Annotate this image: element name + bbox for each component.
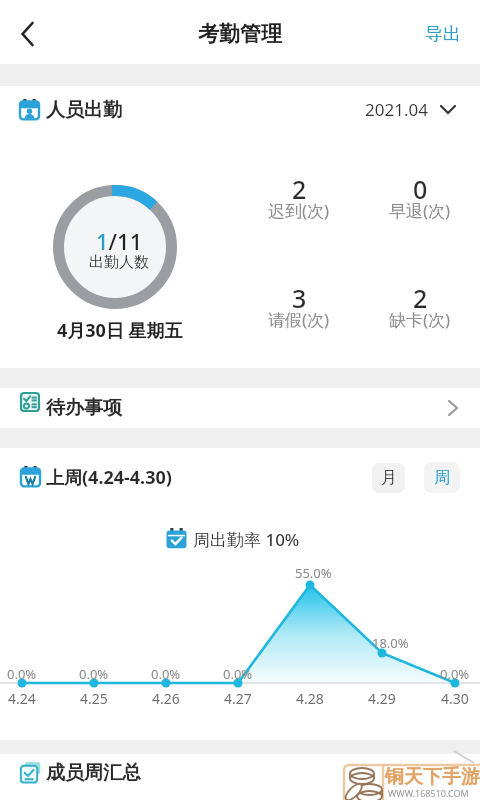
staticText: 月: [381, 468, 397, 488]
staticText: 上周(4.24-4.30): [46, 465, 172, 490]
button[interactable]: [8, 16, 48, 52]
staticText: 0.0%: [79, 665, 109, 683]
staticText: WWW.168510.COM: [388, 787, 469, 799]
staticText: 2: [413, 281, 428, 311]
staticText: 0.0%: [440, 665, 470, 683]
staticText: 4.24: [8, 689, 36, 708]
staticText: 2: [292, 172, 307, 202]
staticText: 出勤人数: [89, 253, 149, 272]
staticText: 1/11: [96, 226, 143, 256]
staticText: 迟到(次): [268, 199, 330, 222]
staticText: 4.28: [296, 689, 324, 708]
button[interactable]: 成员周汇总: [0, 754, 480, 800]
staticText: 4.26: [152, 689, 180, 708]
staticText: 考勤管理: [198, 21, 282, 47]
staticText: 早退(次): [389, 199, 451, 222]
staticText: 18.0%: [372, 634, 409, 652]
button[interactable]: 月: [372, 463, 405, 493]
staticText: 缺卡(次): [389, 308, 451, 331]
staticText: 4.25: [80, 689, 108, 708]
button[interactable]: 导出: [415, 18, 471, 50]
staticText: 待办事项: [46, 396, 122, 420]
staticText: 4.27: [224, 689, 252, 708]
staticText: 周: [434, 468, 450, 488]
staticText: 0.0%: [223, 665, 253, 683]
staticText: 周出勤率 10%: [193, 528, 300, 551]
staticText: 人员出勤: [46, 98, 122, 122]
staticText: 4.30: [441, 689, 469, 708]
staticText: 0.0%: [151, 665, 181, 683]
staticText: 0: [413, 172, 428, 202]
staticText: 55.0%: [295, 564, 332, 582]
staticText: 请假(次): [268, 308, 330, 331]
button[interactable]: 周: [424, 462, 460, 493]
staticText: 3: [292, 281, 307, 311]
staticText: 4月30日 星期五: [57, 318, 183, 343]
staticText: 2021.04: [365, 98, 428, 121]
button[interactable]: 待办事项: [0, 388, 480, 428]
staticText: 铜天下手游: [385, 765, 480, 789]
staticText: 成员周汇总: [46, 761, 141, 785]
staticText: 4.29: [368, 689, 396, 708]
button[interactable]: 2021.04: [360, 94, 462, 124]
staticText: 0.0%: [7, 665, 37, 683]
staticText: 导出: [425, 23, 461, 46]
